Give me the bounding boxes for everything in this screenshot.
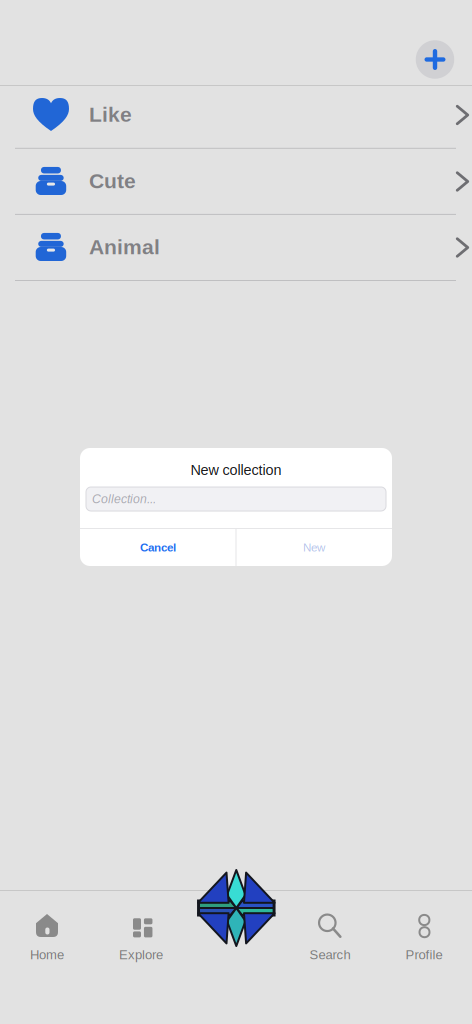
- button[interactable]: Search: [290, 890, 370, 966]
- button[interactable]: Animal: [0, 216, 472, 278]
- staticText: Like: [89, 103, 132, 126]
- staticText: Collection...: [92, 492, 156, 506]
- button[interactable]: Like: [0, 83, 472, 145]
- button[interactable]: Explore: [101, 890, 181, 966]
- button[interactable]: Cute: [0, 150, 472, 212]
- staticText: New collection: [190, 462, 281, 478]
- staticText: Cute: [89, 169, 136, 193]
- staticText: New: [303, 541, 325, 554]
- button[interactable]: Add collection: [416, 40, 454, 79]
- staticText: Cancel: [140, 541, 176, 554]
- staticText: Profile: [405, 947, 442, 962]
- staticText: Explore: [119, 947, 163, 962]
- button[interactable]: Profile: [384, 890, 464, 966]
- staticText: Home: [30, 947, 64, 962]
- button[interactable]: New: [236, 529, 391, 566]
- button[interactable]: Create: [0, 0, 472, 1024]
- staticText: Search: [309, 947, 350, 962]
- button[interactable]: Cancel: [80, 529, 235, 566]
- button[interactable]: Home: [7, 890, 87, 966]
- staticText: Animal: [89, 235, 160, 259]
